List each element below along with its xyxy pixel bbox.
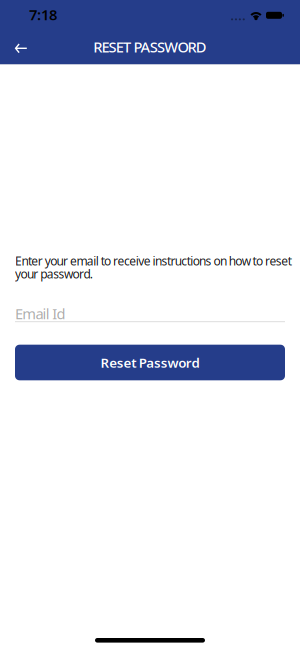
staticText: Enter your email to receive instructions…	[15, 253, 292, 269]
staticText: 7:18	[29, 5, 57, 24]
staticText: your password.	[15, 266, 93, 282]
button[interactable]	[0, 0, 37, 63]
button[interactable]: Reset Password	[15, 345, 285, 380]
staticText: Email Id	[15, 304, 65, 323]
staticText: RESET PASSWORD	[93, 37, 207, 57]
button[interactable]: Email Id	[15, 304, 285, 323]
staticText: Reset Password	[100, 354, 199, 371]
